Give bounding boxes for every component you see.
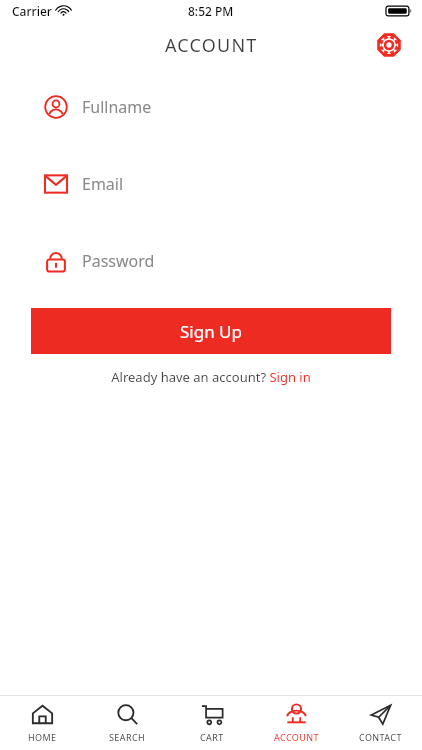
staticText: Fullname [82, 96, 152, 118]
button[interactable]: ACCOUNT [254, 696, 338, 750]
button[interactable]: Fullname [0, 90, 422, 124]
button[interactable]: HOME [0, 696, 85, 750]
button[interactable]: CART [170, 696, 254, 750]
staticText: Email [82, 173, 124, 195]
button[interactable]: Email [0, 167, 422, 201]
button[interactable]: Settings [374, 30, 404, 60]
staticText: HOME [28, 731, 57, 743]
staticText: ACCOUNT [165, 33, 258, 58]
staticText: CONTACT [359, 731, 402, 743]
button[interactable]: Password [0, 244, 422, 278]
button[interactable]: Already have an account? Sign in [111, 368, 311, 386]
button[interactable]: SEARCH [85, 696, 170, 750]
staticText: ACCOUNT [274, 731, 319, 743]
button[interactable]: Sign Up [31, 308, 391, 354]
staticText: Already have an account? Sign in [111, 368, 311, 386]
staticText: Password [82, 250, 155, 272]
staticText: SEARCH [109, 731, 146, 743]
staticText: CART [200, 731, 224, 743]
staticText: 8:52 PM [188, 3, 234, 19]
staticText: Sign Up [180, 320, 242, 343]
button[interactable]: CONTACT [338, 696, 422, 750]
staticText: Carrier [12, 3, 52, 19]
